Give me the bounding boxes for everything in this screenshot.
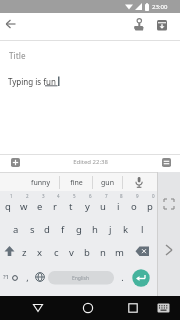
button[interactable] <box>132 269 150 287</box>
button[interactable]: e <box>32 194 48 218</box>
staticText: b <box>84 246 90 259</box>
staticText: h <box>92 223 98 236</box>
button[interactable]: n <box>95 240 111 264</box>
staticText: 5 <box>73 193 76 199</box>
staticText: w <box>20 200 28 213</box>
button[interactable] <box>133 18 144 31</box>
staticText: j <box>109 223 112 236</box>
staticText: s <box>30 223 35 236</box>
button[interactable]: t <box>63 194 79 218</box>
staticText: g <box>76 223 82 236</box>
button[interactable]: English <box>48 271 114 285</box>
staticText: 1 <box>10 193 13 199</box>
staticText: Typing is fun <box>8 76 56 87</box>
button[interactable]: . <box>92 269 152 285</box>
staticText: q <box>5 200 11 213</box>
button[interactable]: m <box>111 240 127 264</box>
staticText: x <box>37 246 43 259</box>
button[interactable]: x <box>32 240 48 264</box>
staticText: i <box>117 200 120 213</box>
button[interactable]: a <box>8 217 24 241</box>
staticText: . <box>121 271 124 283</box>
button[interactable] <box>162 158 171 167</box>
button[interactable]: u <box>95 194 111 218</box>
staticText: n <box>100 246 106 259</box>
button[interactable] <box>3 245 16 258</box>
button[interactable] <box>163 198 175 210</box>
button[interactable]: gun <box>77 175 137 191</box>
button[interactable]: i <box>110 194 126 218</box>
button[interactable] <box>5 19 17 29</box>
staticText: ?1 <box>3 273 10 281</box>
button[interactable] <box>157 303 170 313</box>
button[interactable] <box>35 272 45 282</box>
staticText: 23:00 <box>152 3 168 11</box>
staticText: m <box>115 246 124 259</box>
button[interactable]: l <box>134 217 150 241</box>
staticText: English <box>72 275 90 282</box>
button[interactable]: g <box>71 217 87 241</box>
button[interactable]: j <box>102 217 118 241</box>
staticText: funny <box>31 178 50 188</box>
staticText: r <box>53 200 57 213</box>
button[interactable]: v <box>63 240 79 264</box>
staticText: p <box>147 200 153 213</box>
staticText: 2 <box>26 193 29 199</box>
button[interactable] <box>157 20 167 31</box>
button[interactable]: c <box>48 240 64 264</box>
button[interactable] <box>2 270 19 285</box>
button[interactable]: z <box>16 240 32 264</box>
button[interactable] <box>133 176 145 189</box>
staticText: , <box>26 271 29 283</box>
button[interactable]: r <box>47 194 63 218</box>
button[interactable]: f <box>55 217 71 241</box>
staticText: Title <box>9 50 26 61</box>
staticText: f <box>61 223 65 236</box>
button[interactable] <box>81 301 95 315</box>
button[interactable]: h <box>87 217 103 241</box>
staticText: e <box>37 200 43 213</box>
button[interactable]: o <box>126 194 142 218</box>
staticText: y <box>85 200 90 213</box>
staticText: l <box>141 223 144 236</box>
staticText: 7 <box>105 193 108 199</box>
button[interactable] <box>135 246 150 257</box>
staticText: gun <box>101 178 114 188</box>
staticText: u <box>100 200 106 213</box>
staticText: 0 <box>152 193 155 199</box>
button[interactable]: d <box>39 217 55 241</box>
button[interactable]: p <box>142 194 158 218</box>
button[interactable] <box>11 158 20 167</box>
staticText: a <box>13 223 19 236</box>
button[interactable]: b <box>79 240 95 264</box>
button[interactable] <box>164 244 174 256</box>
staticText: z <box>22 246 27 259</box>
button[interactable] <box>126 301 140 315</box>
staticText: 6 <box>89 193 92 199</box>
staticText: t <box>69 200 73 213</box>
button[interactable]: k <box>118 217 134 241</box>
staticText: 9 <box>136 193 139 199</box>
button[interactable]: w <box>16 194 32 218</box>
button[interactable]: y <box>79 194 95 218</box>
staticText: c <box>54 246 59 259</box>
button[interactable]: q <box>0 194 16 218</box>
staticText: 3 <box>42 193 45 199</box>
staticText: 8 <box>120 193 123 199</box>
button[interactable]: fine <box>46 175 106 191</box>
staticText: d <box>44 223 50 236</box>
button[interactable]: , <box>0 269 57 285</box>
button[interactable]: funny <box>10 175 70 191</box>
staticText: o <box>131 200 137 213</box>
staticText: v <box>69 246 74 259</box>
staticText: 4 <box>57 193 60 199</box>
button[interactable]: s <box>24 217 40 241</box>
staticText: Edited 22:38 <box>73 158 108 166</box>
staticText: k <box>123 223 129 236</box>
staticText: fine <box>70 178 83 188</box>
button[interactable] <box>31 301 45 315</box>
